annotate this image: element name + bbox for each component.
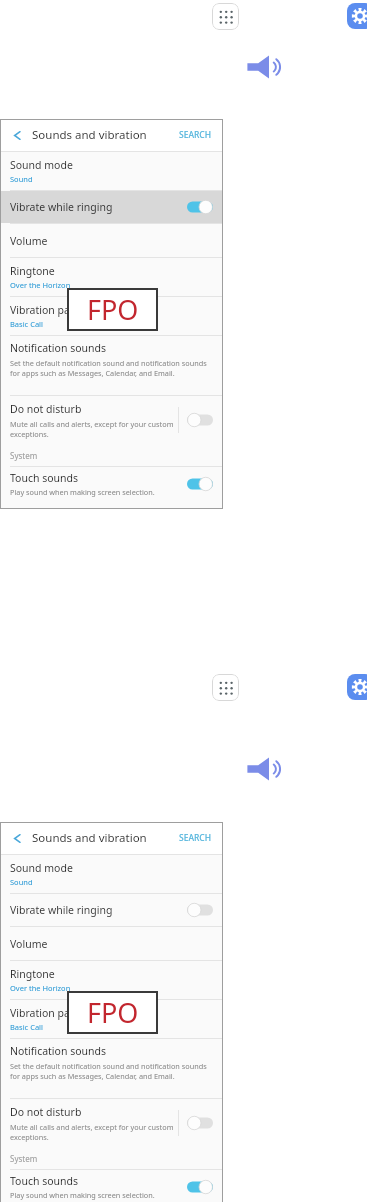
staticText: Ringtone: [10, 264, 55, 278]
staticText: Notification sounds: [10, 1044, 107, 1058]
staticText: Vibration pattern: [10, 1006, 95, 1020]
button[interactable]: On: [187, 200, 213, 214]
button[interactable]: Notification sounds: [0, 1039, 223, 1098]
button[interactable]: Volume: [243, 754, 287, 784]
staticText: Play sound when making screen selection.: [10, 1190, 155, 1200]
button[interactable]: Vibration pattern: [0, 297, 223, 335]
button[interactable]: Settings: [347, 674, 367, 700]
staticText: System: [10, 450, 38, 461]
button[interactable]: Volume: [0, 224, 223, 257]
button[interactable]: Vibrate while ringing: [0, 894, 223, 926]
button[interactable]: Sound mode: [0, 855, 223, 893]
staticText: Basic Call: [10, 1022, 43, 1032]
button[interactable]: On: [187, 477, 213, 491]
staticText: Sound: [10, 174, 33, 184]
button[interactable]: Ringtone: [0, 961, 223, 999]
button[interactable]: Vibration pattern: [0, 1000, 223, 1038]
staticText: System: [10, 1153, 38, 1164]
staticText: Sounds and vibration: [32, 127, 147, 143]
button[interactable]: Do not disturb: [0, 396, 223, 444]
staticText: FPO: [87, 291, 139, 328]
button[interactable]: SEARCH: [177, 829, 214, 847]
button[interactable]: On: [187, 1180, 213, 1194]
button[interactable]: Ringtone: [0, 258, 223, 296]
staticText: Over the Horizon: [10, 983, 71, 993]
staticText: Notification sounds: [10, 341, 107, 355]
staticText: Vibration pattern: [10, 303, 95, 317]
button[interactable]: Apps: [212, 3, 239, 30]
button[interactable]: Back: [8, 829, 26, 847]
staticText: Over the Horizon: [10, 280, 71, 290]
button[interactable]: Touch sounds: [0, 467, 223, 501]
staticText: SEARCH: [179, 129, 212, 141]
staticText: FPO: [87, 994, 139, 1031]
button[interactable]: Touch sounds: [0, 1170, 223, 1202]
button[interactable]: Volume: [0, 927, 223, 960]
button[interactable]: Settings: [347, 3, 367, 29]
button[interactable]: Apps: [212, 674, 239, 701]
staticText: Sound mode: [10, 158, 73, 172]
staticText: Touch sounds: [10, 471, 79, 485]
staticText: Do not disturb: [10, 402, 82, 416]
staticText: Set the default notification sound and n…: [10, 358, 211, 378]
staticText: Volume: [10, 937, 48, 951]
staticText: Vibrate while ringing: [10, 903, 113, 917]
staticText: Basic Call: [10, 319, 43, 329]
staticText: Ringtone: [10, 967, 55, 981]
staticText: Play sound when making screen selection.: [10, 487, 155, 497]
button[interactable]: Back: [8, 126, 26, 144]
button[interactable]: Notification sounds: [0, 336, 223, 395]
button[interactable]: Off: [187, 903, 213, 917]
button[interactable]: Off: [187, 413, 213, 427]
button[interactable]: Off: [187, 1116, 213, 1130]
staticText: Vibrate while ringing: [10, 200, 113, 214]
staticText: Sound: [10, 877, 33, 887]
button[interactable]: SEARCH: [177, 126, 214, 144]
staticText: Do not disturb: [10, 1105, 82, 1119]
button[interactable]: Do not disturb: [0, 1099, 223, 1147]
button[interactable]: Sound mode: [0, 152, 223, 190]
staticText: Sounds and vibration: [32, 830, 147, 846]
staticText: Volume: [10, 234, 48, 248]
staticText: Mute all calls and alerts, except for yo…: [10, 419, 178, 439]
button[interactable]: Volume: [243, 52, 287, 82]
staticText: Mute all calls and alerts, except for yo…: [10, 1122, 178, 1142]
staticText: Sound mode: [10, 861, 73, 875]
button[interactable]: Vibrate while ringing: [0, 191, 223, 223]
staticText: SEARCH: [179, 832, 212, 844]
staticText: Set the default notification sound and n…: [10, 1061, 211, 1081]
staticText: Touch sounds: [10, 1174, 79, 1188]
